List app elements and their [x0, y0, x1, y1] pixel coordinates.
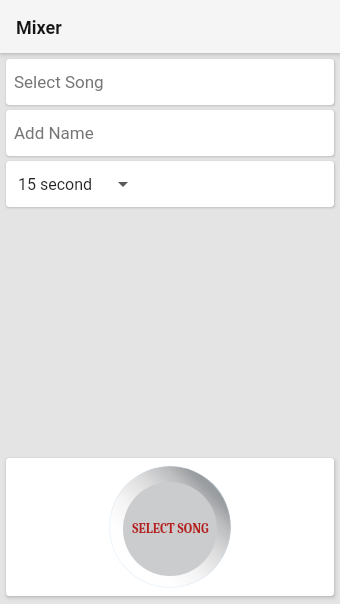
staticText: 15 second [18, 175, 93, 194]
button[interactable]: Select song [109, 466, 231, 588]
staticText: Select Song [14, 72, 104, 92]
button[interactable]: 15 second [6, 161, 334, 207]
staticText: Add Name [14, 123, 94, 143]
button[interactable]: Add Name [6, 110, 334, 156]
button[interactable]: Select Song [6, 59, 334, 105]
staticText: Mixer [16, 17, 62, 38]
staticText: SELECT SONG [132, 521, 209, 536]
